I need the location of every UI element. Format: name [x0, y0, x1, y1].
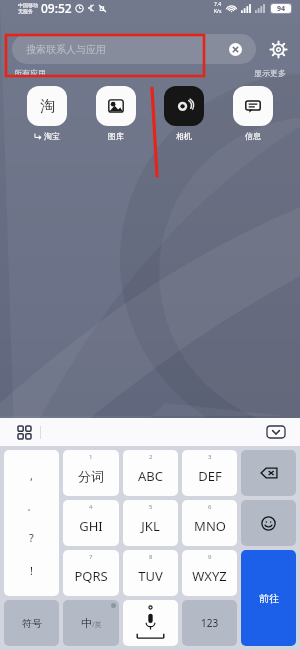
button[interactable]: Clear — [229, 43, 242, 56]
staticText: 图库 — [108, 131, 124, 141]
staticText: MNO — [194, 517, 226, 535]
staticText: 7 — [89, 553, 93, 561]
staticText: WXYZ — [192, 567, 227, 585]
staticText: , — [30, 468, 33, 483]
staticText: ABC — [138, 467, 163, 485]
staticText: 所有应用 — [14, 68, 46, 78]
button[interactable]: 7 — [63, 550, 119, 596]
button[interactable]: 淘 — [18, 84, 76, 143]
staticText: ! — [30, 563, 33, 578]
staticText: 2 — [149, 453, 153, 461]
button[interactable]: 显示更多 — [254, 68, 286, 78]
button[interactable]: 符号 — [4, 600, 59, 646]
staticText: PQRS — [74, 567, 108, 585]
staticText: 。 — [27, 501, 36, 512]
staticText: 3 — [208, 453, 212, 461]
staticText: 无服务 — [18, 8, 33, 14]
button[interactable]: 信息 — [224, 84, 282, 143]
staticText: 8 — [149, 553, 153, 561]
button[interactable]: Emoji — [241, 500, 296, 546]
staticText: 5 — [149, 503, 153, 511]
staticText: 分词 — [78, 468, 104, 484]
staticText: 7.4 — [214, 1, 222, 8]
staticText: GHI — [79, 517, 103, 535]
button[interactable]: Settings — [266, 37, 290, 61]
button[interactable]: 4 — [63, 500, 119, 546]
button[interactable]: Keyboard modes — [14, 422, 34, 442]
staticText: 搜索联系人与应用 — [26, 43, 106, 56]
staticText: /英 — [92, 620, 102, 630]
button[interactable]: Hide keyboard — [266, 425, 286, 439]
staticText: 1 — [89, 453, 93, 461]
button[interactable]: Delete — [241, 450, 296, 496]
button[interactable]: 前往 — [241, 550, 296, 646]
staticText: 信息 — [245, 131, 261, 141]
button[interactable]: 5 — [123, 500, 178, 546]
button[interactable]: 中 — [63, 600, 119, 646]
staticText: 淘宝 — [44, 131, 60, 141]
button[interactable]: 1 — [63, 450, 119, 496]
staticText: 6 — [208, 503, 212, 511]
button[interactable]: Space — [123, 600, 178, 646]
staticText: 94 — [277, 4, 286, 14]
staticText: 09:52 — [41, 0, 72, 16]
button[interactable]: 2 — [123, 450, 178, 496]
button[interactable]: 搜索联系人与应用 — [12, 34, 256, 64]
staticText: ? — [29, 530, 34, 545]
staticText: 中 — [81, 616, 92, 630]
button[interactable]: 8 — [123, 550, 178, 596]
staticText: 9 — [208, 553, 212, 561]
button[interactable]: 3 — [182, 450, 237, 496]
staticText: 相机 — [176, 131, 192, 141]
button[interactable]: 6 — [182, 500, 237, 546]
staticText: DEF — [198, 467, 222, 485]
staticText: 中国移动 — [18, 2, 38, 8]
staticText: 显示更多 — [254, 68, 286, 78]
button[interactable]: 相机 — [155, 84, 213, 143]
button[interactable]: 9 — [182, 550, 237, 596]
staticText: 123 — [201, 616, 219, 630]
button[interactable]: 图库 — [87, 84, 145, 143]
staticText: JKL — [141, 517, 160, 535]
staticText: 4 — [89, 503, 93, 511]
staticText: 淘 — [40, 97, 55, 116]
staticText: K/s — [214, 8, 222, 15]
staticText: 前往 — [259, 592, 279, 605]
button[interactable]: , — [4, 450, 59, 596]
staticText: TUV — [138, 567, 163, 585]
staticText: 符号 — [22, 617, 42, 630]
button[interactable]: 123 — [182, 600, 237, 646]
